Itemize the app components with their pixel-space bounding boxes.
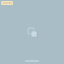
button[interactable]: Duplicate (28, 28, 37, 37)
button[interactable] (1, 1, 13, 5)
